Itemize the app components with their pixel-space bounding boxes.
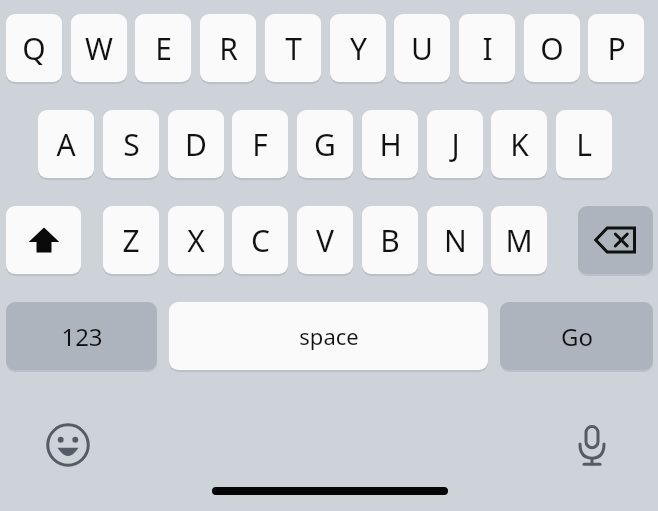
button[interactable]: N — [427, 206, 483, 274]
staticText: C — [251, 220, 270, 261]
button[interactable]: F — [232, 110, 288, 178]
button[interactable]: O — [524, 14, 580, 82]
button[interactable]: H — [362, 110, 418, 178]
button[interactable]: P — [588, 14, 644, 82]
staticText: R — [219, 28, 238, 69]
staticText: Y — [350, 28, 367, 69]
button[interactable]: A — [38, 110, 94, 178]
staticText: S — [123, 124, 140, 165]
staticText: G — [314, 124, 336, 165]
button[interactable]: Z — [103, 206, 159, 274]
button[interactable]: T — [265, 14, 321, 82]
button[interactable]: Emoji — [40, 417, 96, 473]
button[interactable]: B — [362, 206, 418, 274]
staticText: K — [510, 124, 529, 165]
button[interactable]: K — [491, 110, 547, 178]
staticText: A — [56, 124, 76, 165]
staticText: I — [482, 28, 493, 69]
staticText: W — [85, 28, 113, 69]
staticText: Z — [122, 220, 140, 261]
staticText: U — [411, 28, 433, 69]
button[interactable]: J — [427, 110, 483, 178]
staticText: T — [285, 28, 302, 69]
staticText: D — [185, 124, 207, 165]
staticText: L — [576, 124, 592, 165]
staticText: Q — [22, 28, 46, 69]
staticText: F — [252, 124, 268, 165]
button[interactable]: C — [232, 206, 288, 274]
button[interactable]: space — [169, 302, 488, 370]
button[interactable]: G — [297, 110, 353, 178]
button[interactable]: L — [556, 110, 612, 178]
staticText: 123 — [61, 320, 103, 353]
button[interactable]: E — [135, 14, 191, 82]
button[interactable]: Y — [330, 14, 386, 82]
staticText: E — [155, 28, 172, 69]
button[interactable]: U — [394, 14, 450, 82]
button[interactable]: S — [103, 110, 159, 178]
button[interactable]: Q — [6, 14, 62, 82]
staticText: M — [505, 220, 533, 261]
button[interactable]: Shift — [6, 206, 81, 274]
button[interactable]: Go — [500, 302, 653, 370]
button[interactable]: D — [168, 110, 224, 178]
staticText: Go — [561, 320, 593, 353]
button[interactable]: I — [459, 14, 515, 82]
staticText: J — [451, 124, 460, 165]
staticText: O — [540, 28, 564, 69]
button[interactable]: Voice input — [564, 417, 620, 473]
staticText: B — [380, 220, 400, 261]
button[interactable]: Backspace — [578, 206, 653, 274]
staticText: P — [607, 28, 626, 69]
staticText: N — [444, 220, 467, 261]
staticText: H — [379, 124, 402, 165]
button[interactable]: 123 — [6, 302, 157, 370]
button[interactable]: W — [71, 14, 127, 82]
button[interactable]: R — [200, 14, 256, 82]
button[interactable]: V — [297, 206, 353, 274]
staticText: X — [187, 220, 205, 261]
staticText: V — [316, 220, 334, 261]
button[interactable]: M — [491, 206, 547, 274]
staticText: space — [299, 321, 359, 351]
button[interactable]: X — [168, 206, 224, 274]
